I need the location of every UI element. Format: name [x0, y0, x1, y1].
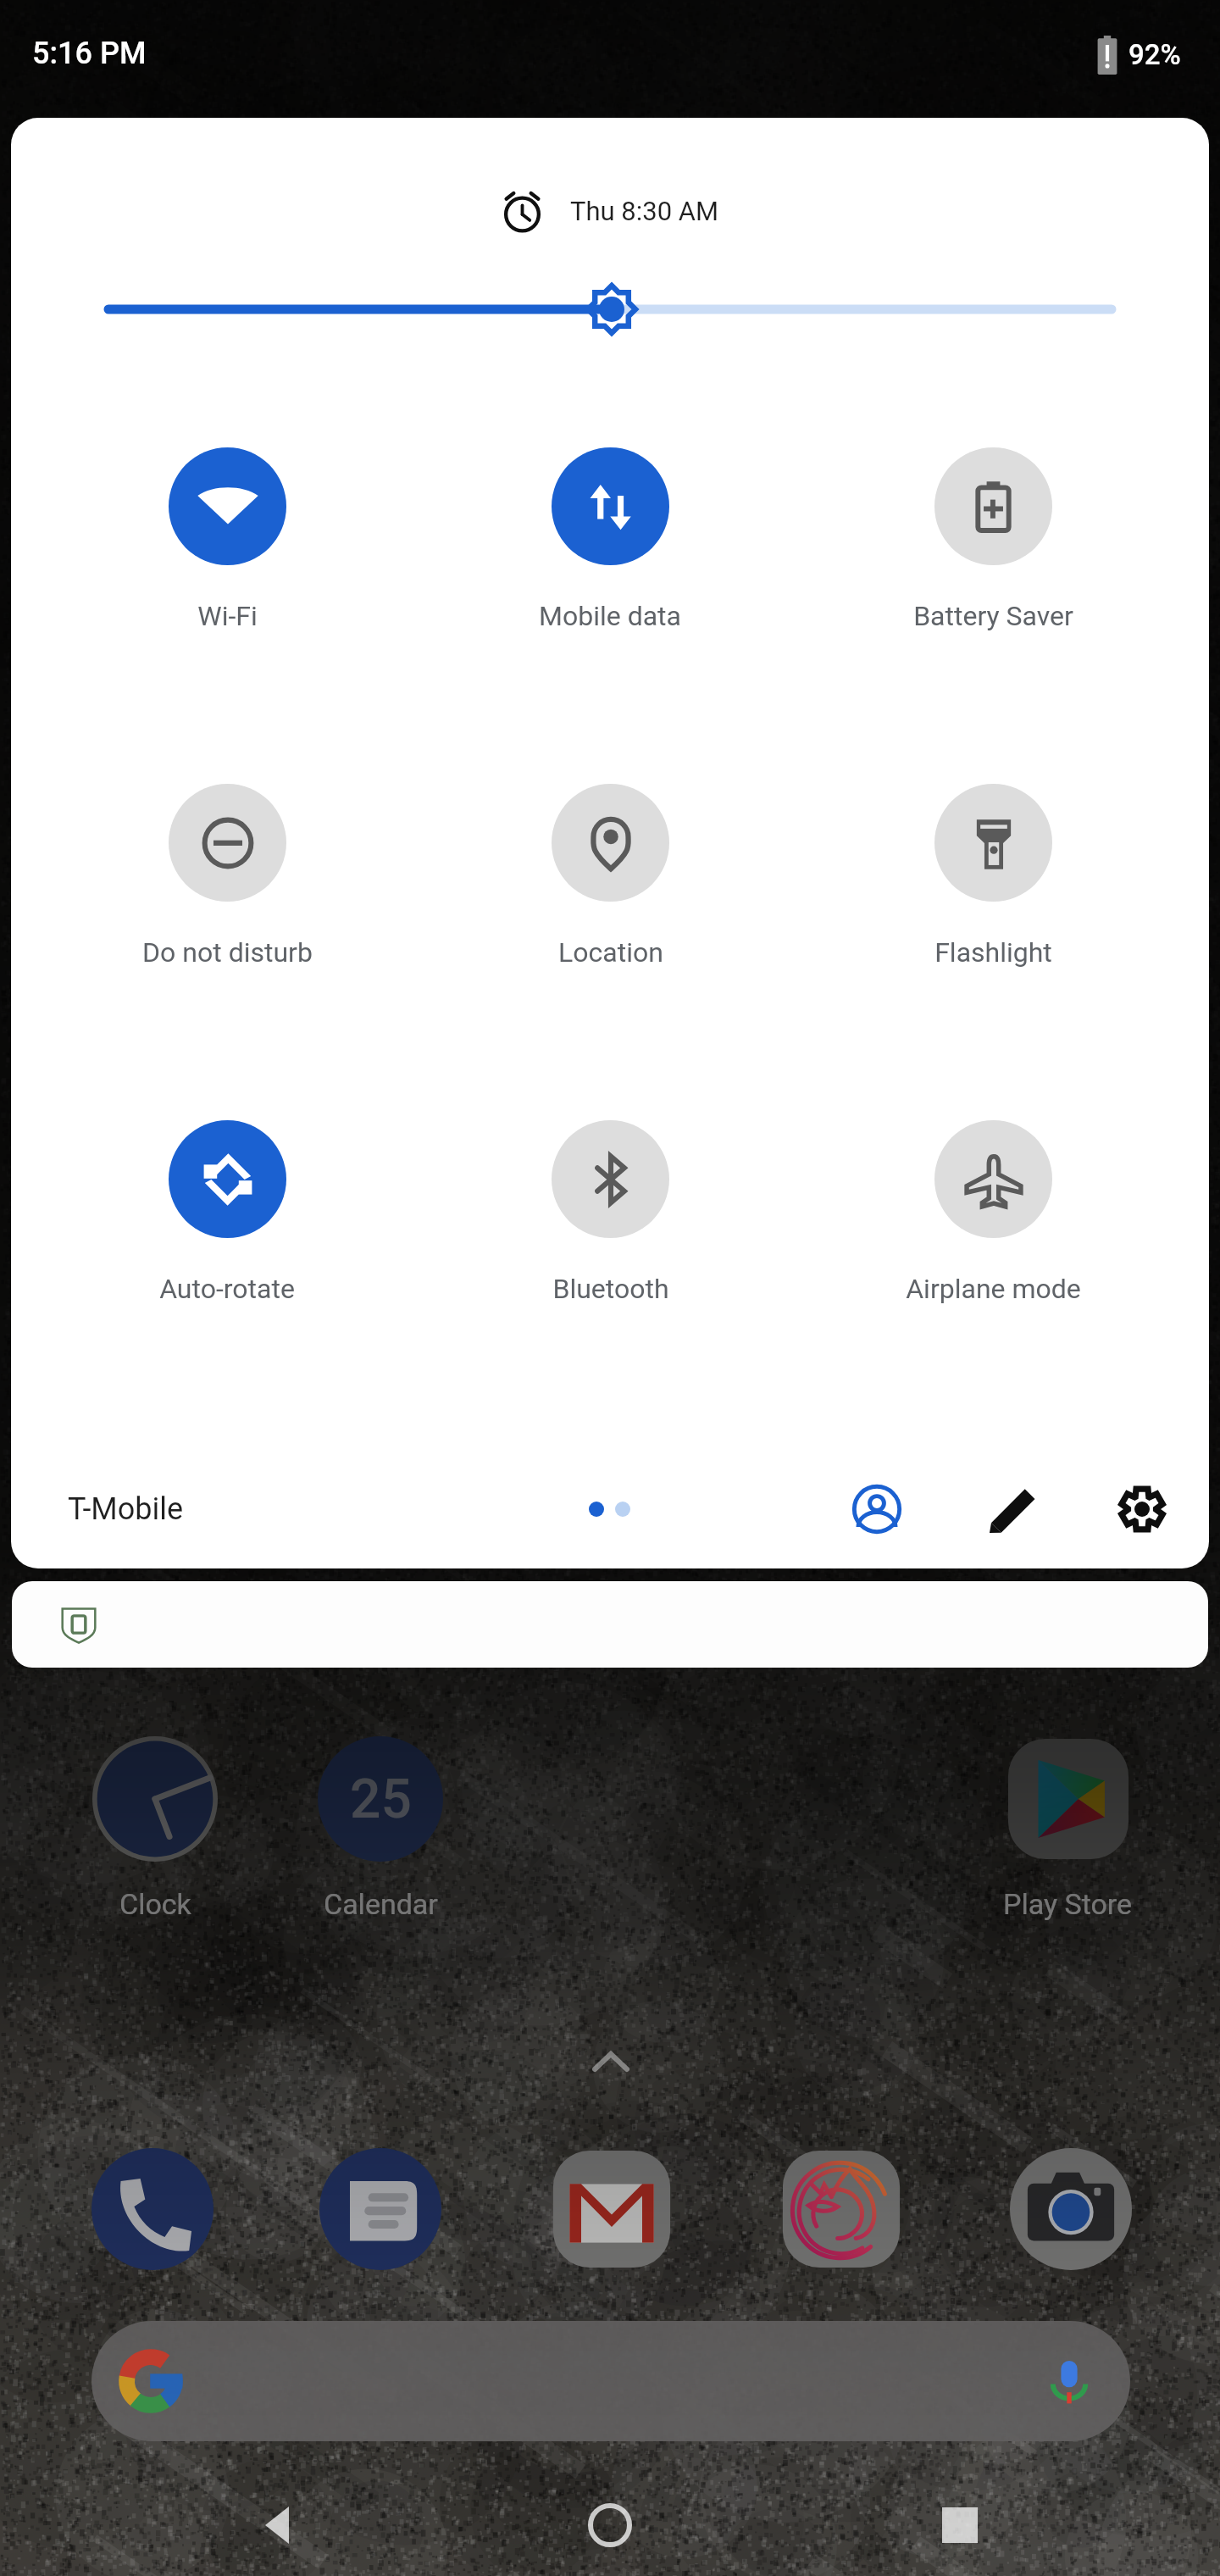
button[interactable]: Firefox: [780, 2148, 902, 2270]
button[interactable]: Battery Saver: [874, 447, 1112, 659]
button[interactable]: Clock: [45, 1736, 265, 1948]
button[interactable]: Play Store: [957, 1736, 1178, 1948]
staticText: Location: [558, 936, 663, 969]
button[interactable]: [12, 1581, 1208, 1668]
button[interactable]: Bluetooth: [491, 1120, 729, 1332]
staticText: Bluetooth: [552, 1273, 669, 1305]
button[interactable]: Do not disturb: [108, 784, 346, 996]
staticText: T-Mobile: [68, 1491, 184, 1527]
button[interactable]: Settings: [1092, 1459, 1192, 1559]
button[interactable]: Gmail: [551, 2148, 673, 2270]
button[interactable]: Account: [827, 1459, 927, 1559]
staticText: 92%: [1128, 38, 1181, 71]
staticText: Clock: [119, 1887, 191, 1921]
button[interactable]: Auto-rotate: [108, 1120, 346, 1332]
staticText: 5:16 PM: [32, 36, 147, 71]
staticText: Calendar: [324, 1887, 438, 1921]
staticText: Do not disturb: [142, 936, 313, 969]
staticText: Flashlight: [934, 936, 1052, 969]
button[interactable]: Edit: [963, 1459, 1063, 1559]
button[interactable]: Flashlight: [874, 784, 1112, 996]
button[interactable]: Calendar: [270, 1736, 491, 1948]
button[interactable]: Location: [491, 784, 729, 996]
staticText: Thu 8:30 AM: [570, 196, 719, 226]
staticText: Auto-rotate: [159, 1273, 295, 1305]
staticText: 25: [350, 1768, 412, 1831]
button[interactable]: [91, 2321, 1130, 2441]
button[interactable]: Wi-Fi: [108, 447, 346, 659]
button[interactable]: Mobile data: [491, 447, 729, 659]
button[interactable]: Messages: [319, 2148, 441, 2270]
staticText: Airplane mode: [906, 1273, 1081, 1305]
button[interactable]: Airplane mode: [874, 1120, 1112, 1332]
button[interactable]: Phone: [91, 2148, 213, 2270]
staticText: Wi-Fi: [197, 600, 258, 632]
staticText: Battery Saver: [913, 600, 1073, 632]
staticText: Play Store: [1003, 1887, 1133, 1921]
staticText: Mobile data: [539, 600, 681, 632]
button[interactable]: Camera: [1010, 2148, 1132, 2270]
